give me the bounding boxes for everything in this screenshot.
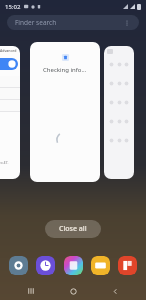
button[interactable]: Files	[91, 256, 110, 275]
staticText: 15:02	[5, 3, 21, 11]
staticText: Checking info...	[43, 66, 87, 74]
other: More options	[123, 19, 131, 27]
button[interactable]: Gallery	[64, 256, 83, 275]
button[interactable]: Clock	[36, 256, 55, 275]
staticText: Advanced	[0, 48, 17, 53]
button[interactable]	[104, 46, 134, 179]
button[interactable]: Settings	[9, 256, 28, 275]
button[interactable]: Advanced	[0, 46, 20, 179]
button[interactable]: Checking info...	[30, 42, 100, 182]
staticText: Finder search	[15, 18, 57, 27]
button[interactable]: Close all	[45, 220, 101, 238]
button[interactable]: Recents	[20, 282, 42, 300]
staticText: e Pro 47.	[0, 160, 9, 165]
button[interactable]: Back	[104, 282, 126, 300]
staticText: Close all	[59, 224, 87, 234]
button[interactable]: Home	[62, 282, 84, 300]
button[interactable]: Flipboard	[118, 256, 137, 275]
button[interactable]: Finder search	[7, 15, 139, 30]
